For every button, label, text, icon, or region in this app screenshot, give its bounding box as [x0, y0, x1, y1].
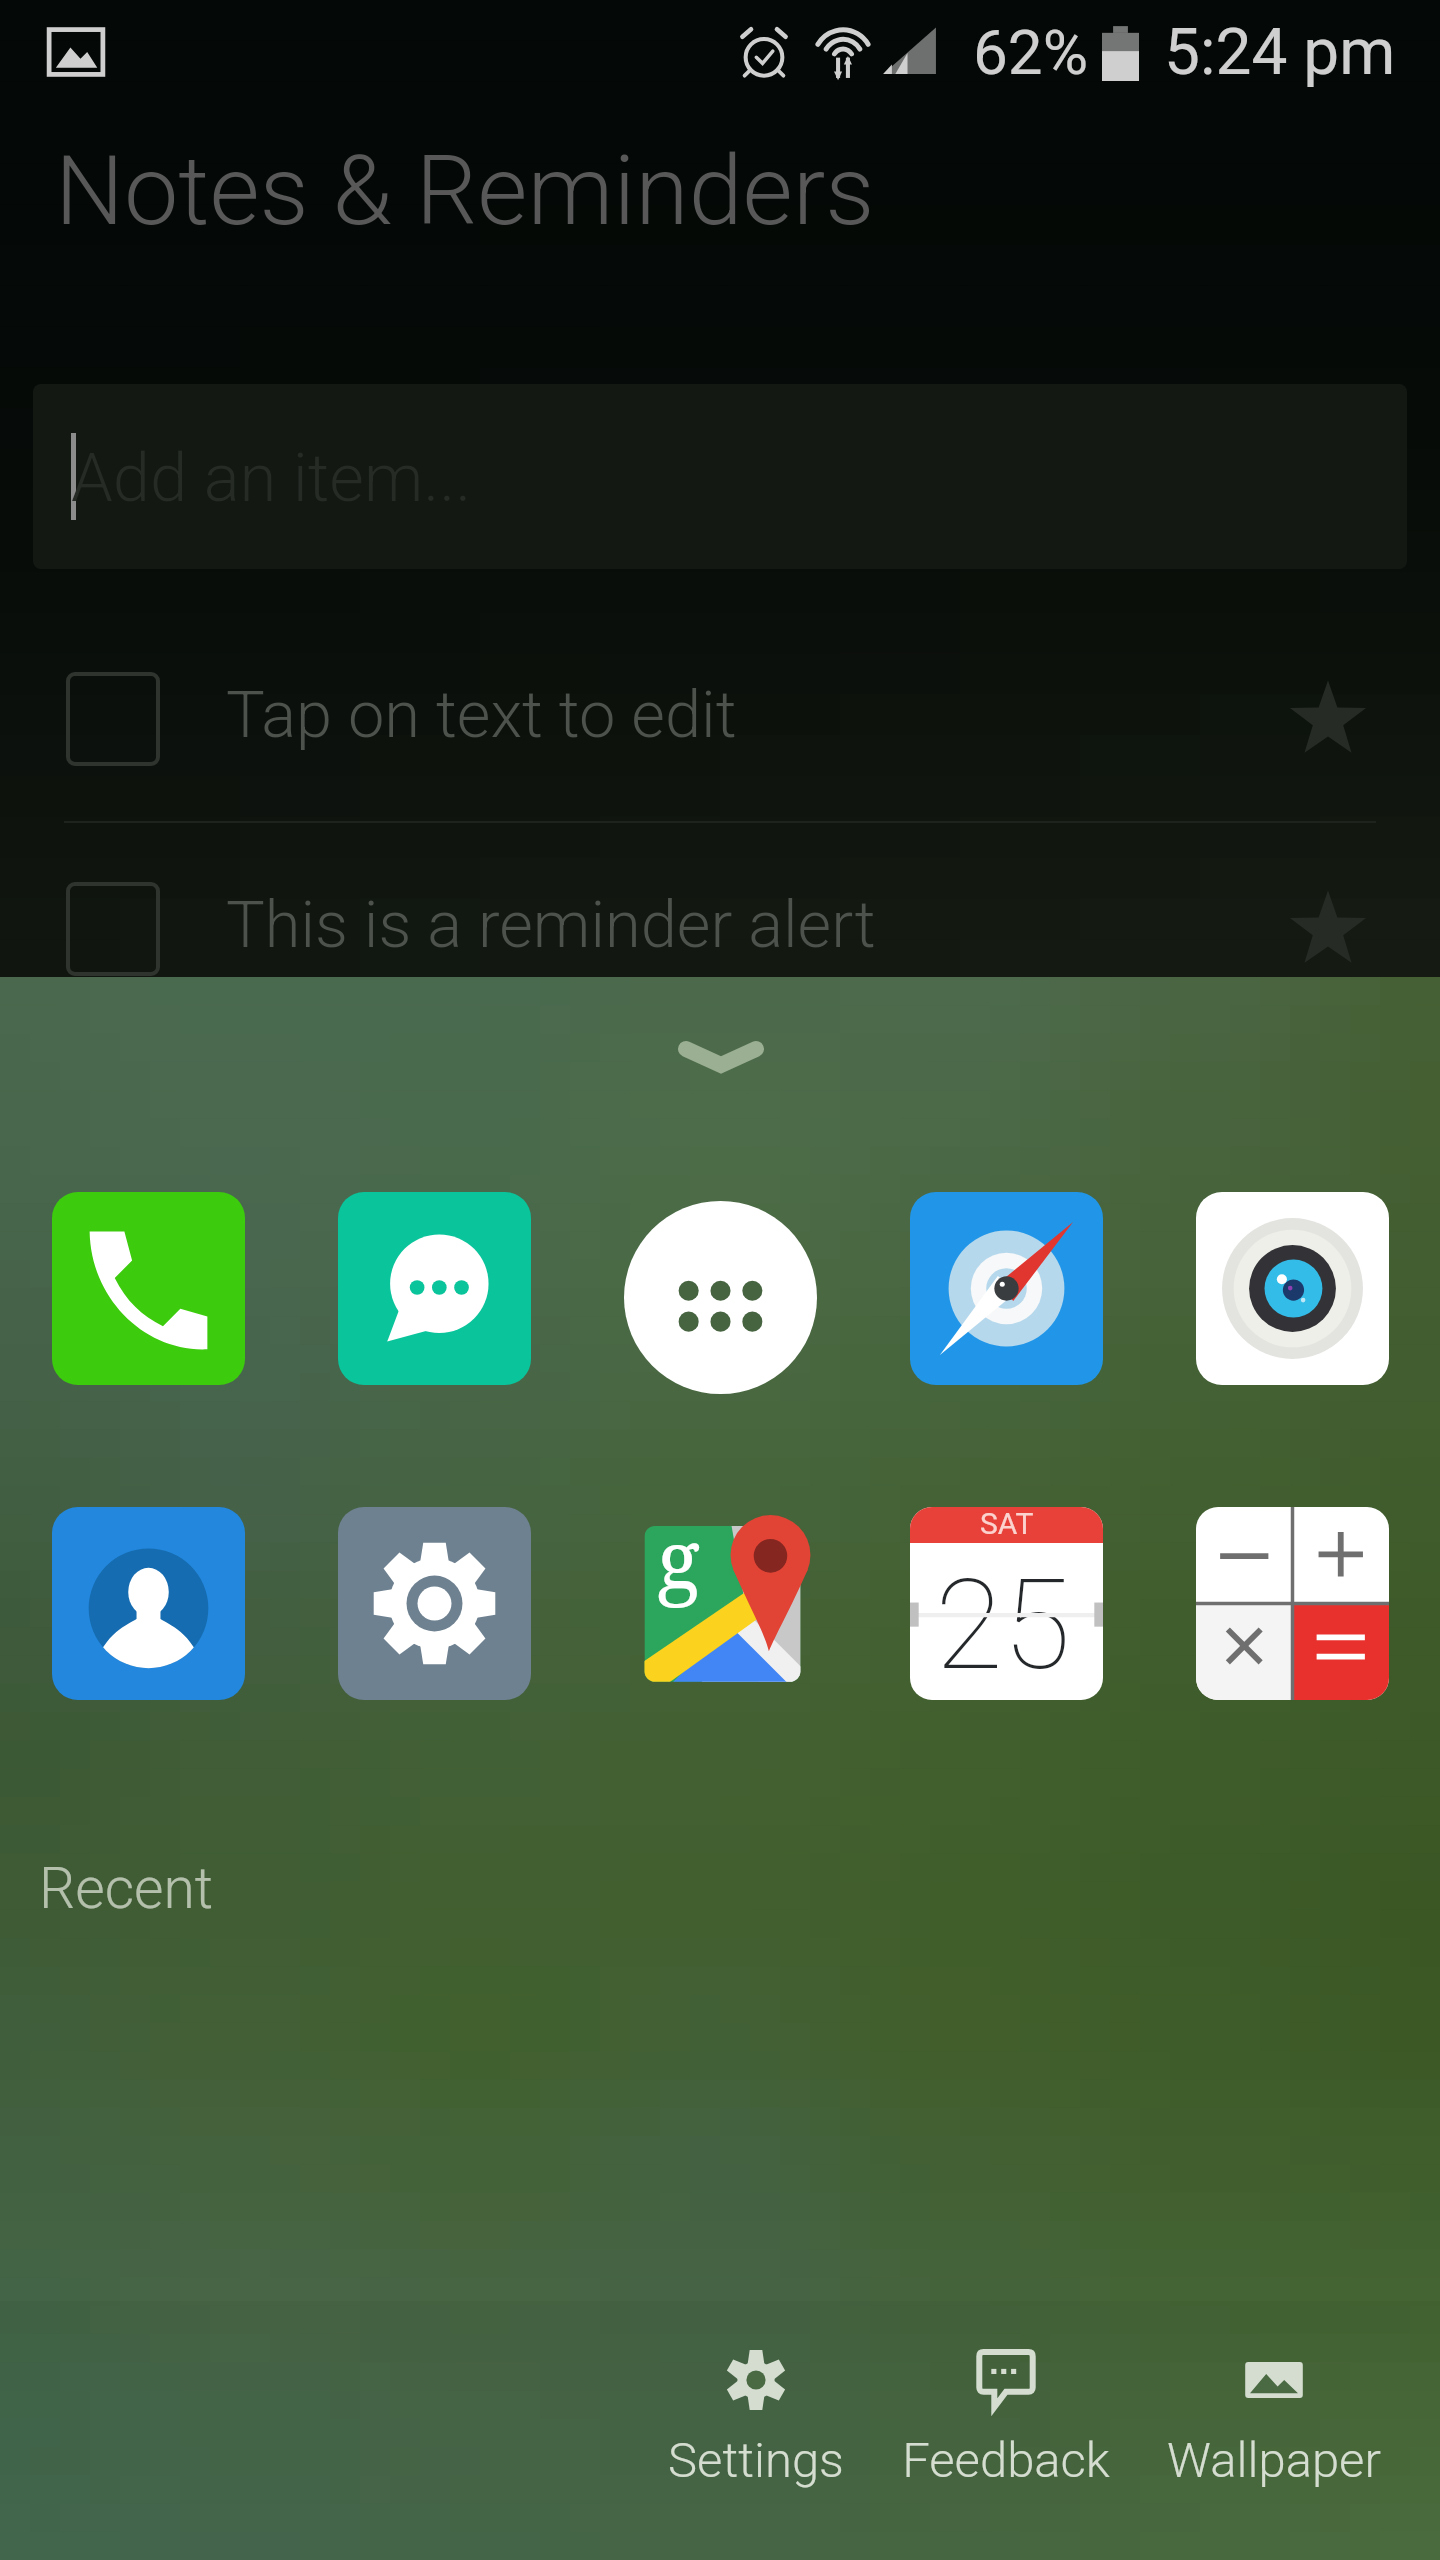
other: All apps: [624, 1201, 817, 1394]
staticText: g: [657, 1503, 701, 1612]
button[interactable]: Star: [1268, 652, 1388, 772]
staticText: Settings: [668, 2432, 844, 2489]
button[interactable]: Messages: [314, 1178, 554, 1399]
button[interactable]: Phone: [28, 1178, 268, 1399]
button[interactable]: Collapse drawer: [651, 977, 791, 1117]
button[interactable]: All apps: [600, 1178, 840, 1399]
staticText: Feedback: [902, 2432, 1110, 2489]
button[interactable]: Wallpaper: [1140, 2324, 1408, 2524]
other: Contacts: [52, 1507, 245, 1700]
button[interactable]: Toggle item: [0, 852, 1440, 1002]
button[interactable]: Add an item...: [33, 384, 1407, 569]
other: Settings: [338, 1507, 531, 1700]
other: Messages: [338, 1192, 531, 1385]
other: Browser: [910, 1192, 1103, 1385]
button[interactable]: Contacts: [28, 1493, 268, 1714]
other: Maps: [624, 1507, 817, 1700]
button[interactable]: Calendar: [886, 1493, 1126, 1714]
staticText: Add an item...: [71, 439, 472, 518]
button[interactable]: Settings: [314, 1493, 554, 1714]
button[interactable]: Camera: [1172, 1178, 1412, 1399]
button[interactable]: Toggle item: [0, 642, 1440, 792]
button[interactable]: Feedback: [872, 2324, 1140, 2524]
staticText: 62%: [973, 16, 1089, 89]
button[interactable]: Browser: [886, 1178, 1126, 1399]
staticText: Notes & Reminders: [55, 134, 875, 248]
other: Phone: [52, 1192, 245, 1385]
button[interactable]: Star: [1268, 862, 1388, 982]
button[interactable]: Calculator: [1172, 1493, 1412, 1714]
staticText: SAT: [980, 1507, 1034, 1541]
staticText: Wallpaper: [1167, 2432, 1381, 2489]
staticText: This is a reminder alert: [226, 887, 876, 963]
button[interactable]: Settings: [622, 2324, 890, 2524]
button[interactable]: Toggle item: [66, 672, 160, 766]
other: Camera: [1196, 1192, 1389, 1385]
button[interactable]: Toggle item: [66, 882, 160, 976]
staticText: 25: [935, 1553, 1071, 1698]
other: Calculator: [1196, 1507, 1389, 1700]
staticText: 5:24 pm: [1164, 15, 1396, 90]
other: Calendar: [910, 1507, 1103, 1700]
button[interactable]: Maps: [600, 1493, 840, 1714]
staticText: Tap on text to edit: [226, 677, 737, 753]
staticText: Recent: [39, 1855, 214, 1922]
